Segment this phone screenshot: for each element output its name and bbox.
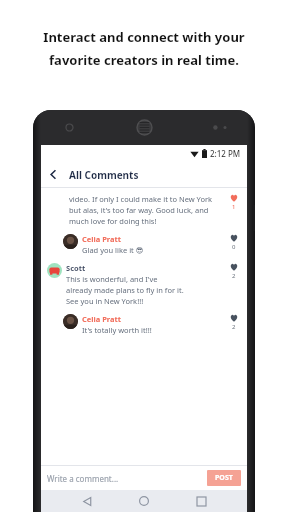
staticText: 0 <box>232 243 236 251</box>
staticText: Celia Pratt <box>82 314 122 324</box>
button[interactable]: Celia Pratt <box>41 227 247 256</box>
button[interactable]: Home <box>133 490 155 512</box>
staticText: 2 <box>232 272 236 280</box>
button[interactable]: Like <box>225 194 243 211</box>
staticText: Scott <box>66 263 86 273</box>
button[interactable]: Like <box>225 234 243 251</box>
staticText: 1 <box>232 203 236 211</box>
button[interactable]: POST <box>207 470 241 486</box>
staticText: Celia Pratt <box>82 234 122 244</box>
staticText: All Comments <box>69 168 139 182</box>
button[interactable]: Like <box>225 263 243 280</box>
staticText: 2:12 PM <box>210 148 241 159</box>
button[interactable]: Back <box>76 490 98 512</box>
staticText: Glad you like it 😎 <box>82 245 144 255</box>
staticText: but alas, it's too far way. Good luck, a… <box>69 205 209 215</box>
staticText: Interact and connect with your <box>43 28 245 46</box>
staticText: favorite creators in real time. <box>49 51 239 69</box>
staticText: See you in New York!!! <box>66 296 144 306</box>
staticText: video. If only I could make it to New Yo… <box>69 194 213 204</box>
button[interactable]: Write a comment... <box>47 473 207 484</box>
button[interactable]: Scott <box>41 256 247 307</box>
button[interactable]: Back <box>41 162 65 187</box>
staticText: It's totally worth it!!! <box>82 325 152 335</box>
staticText: much love for doing this! <box>69 216 157 226</box>
button[interactable]: Celia Pratt <box>41 307 247 336</box>
staticText: Write a comment... <box>47 473 119 484</box>
staticText: 2 <box>232 323 236 331</box>
staticText: already made plans to fly in for it. <box>66 285 184 295</box>
staticText: POST <box>215 473 233 483</box>
button[interactable]: Recent apps <box>190 490 212 512</box>
button[interactable]: Like <box>225 314 243 331</box>
staticText: This is wonderful, and I've <box>66 274 158 284</box>
